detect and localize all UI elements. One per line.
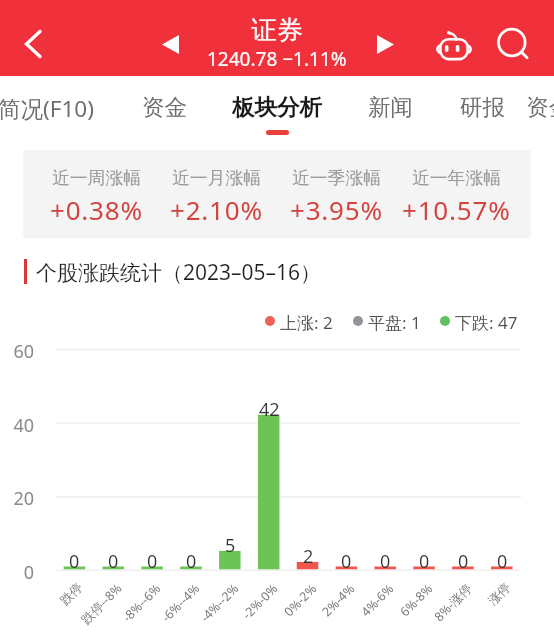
staticText: 1240.78 −1.11% — [207, 46, 347, 70]
staticText: +2.10% — [170, 192, 263, 222]
staticText: 8%-涨停 — [430, 580, 476, 625]
button[interactable]: 资金 — [110, 76, 218, 136]
staticText: 跌停--8% — [78, 580, 126, 628]
button[interactable]: Next — [363, 22, 407, 66]
staticText: 0 — [341, 549, 352, 571]
staticText: 近一周涨幅 — [52, 167, 141, 189]
staticText: 0 — [147, 549, 158, 571]
button[interactable]: 资金流 — [506, 76, 554, 136]
staticText: 0 — [108, 549, 119, 571]
button[interactable]: 板块分析 — [223, 76, 331, 136]
staticText: 个股涨跌统计（2023–05–16） — [36, 258, 322, 284]
staticText: 平盘: 1 — [368, 311, 421, 331]
button[interactable]: 新闻 — [336, 76, 444, 136]
staticText: 涨停 — [485, 580, 514, 609]
staticText: 近一年涨幅 — [412, 167, 501, 189]
staticText: 新闻 — [368, 93, 413, 121]
staticText: -8%--6% — [119, 580, 165, 626]
staticText: 证券 — [251, 14, 303, 47]
staticText: +3.95% — [290, 192, 383, 222]
staticText: 6%-8% — [396, 580, 437, 620]
staticText: -6%--4% — [158, 580, 204, 626]
button[interactable]: Previous — [148, 22, 192, 66]
staticText: 2%-4% — [318, 580, 359, 620]
button[interactable]: 研报 — [428, 76, 536, 136]
button[interactable]: Back — [5, 16, 61, 72]
staticText: 近一月涨幅 — [172, 167, 261, 189]
staticText: 0 — [380, 549, 391, 571]
staticText: 40 — [13, 413, 34, 437]
staticText: 近一季涨幅 — [292, 167, 381, 189]
staticText: 板块分析 — [232, 93, 322, 121]
staticText: 上涨: 2 — [280, 311, 333, 331]
staticText: 简况(F10) — [0, 93, 94, 124]
button[interactable]: Search — [490, 21, 536, 67]
staticText: 2 — [303, 544, 314, 566]
staticText: +0.38% — [50, 192, 143, 222]
staticText: 跌停 — [57, 580, 86, 609]
staticText: 4%-6% — [357, 580, 398, 620]
staticText: 0 — [497, 549, 508, 571]
staticText: 0 — [23, 560, 34, 584]
staticText: +10.57% — [402, 192, 511, 222]
staticText: 资金 — [142, 93, 187, 121]
staticText: -4%--2% — [197, 580, 243, 626]
staticText: 0 — [69, 549, 80, 571]
staticText: 42 — [259, 397, 280, 419]
staticText: 20 — [13, 486, 34, 510]
staticText: 5 — [225, 533, 236, 555]
button[interactable]: AI assistant — [430, 21, 478, 69]
staticText: 0 — [458, 549, 469, 571]
staticText: 60 — [13, 339, 34, 363]
staticText: 0 — [419, 549, 430, 571]
button[interactable]: 简况(F10) — [0, 76, 100, 136]
staticText: 资金流 — [526, 93, 554, 121]
staticText: -2%-0% — [239, 580, 282, 623]
staticText: 0%-2% — [280, 580, 321, 620]
staticText: 下跌: 47 — [455, 311, 518, 331]
staticText: 研报 — [460, 93, 505, 121]
staticText: 0 — [186, 549, 197, 571]
